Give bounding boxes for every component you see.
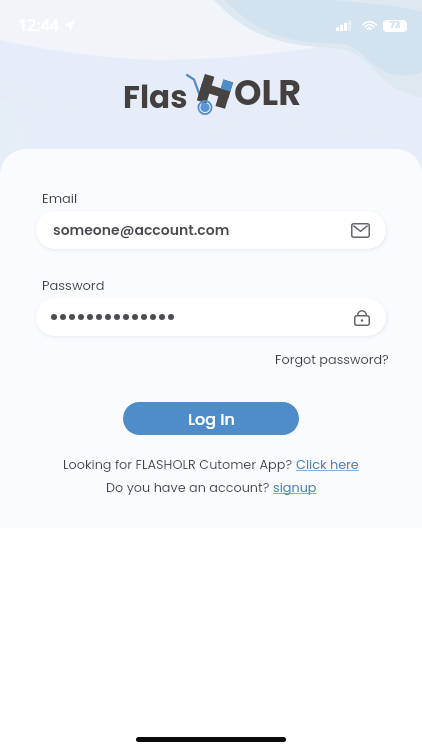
button[interactable]: Forgot password? <box>275 351 389 369</box>
staticText: Do you have an account? <box>106 479 273 497</box>
staticText: 73 <box>390 19 401 32</box>
staticText: Log In <box>188 408 235 430</box>
button[interactable]: Click here <box>296 456 359 474</box>
staticText: Click here <box>296 456 359 474</box>
staticText: Forgot password? <box>275 351 389 369</box>
staticText: 12:44 <box>18 14 60 36</box>
staticText: Password <box>42 276 105 294</box>
staticText: Looking for FLASHOLR Cutomer App? <box>63 456 296 474</box>
staticText: someone@account.com <box>53 220 230 240</box>
button[interactable]: signup <box>273 479 317 497</box>
other: Password <box>354 309 370 326</box>
button[interactable]: Log In <box>123 402 299 435</box>
staticText: OLR <box>234 68 302 117</box>
staticText: signup <box>273 479 317 497</box>
button[interactable]: someone@account.com <box>36 211 386 249</box>
other: Email <box>351 223 370 238</box>
staticText: Flas <box>123 75 188 118</box>
staticText: Email <box>42 189 78 207</box>
button[interactable]: Password <box>36 298 386 336</box>
